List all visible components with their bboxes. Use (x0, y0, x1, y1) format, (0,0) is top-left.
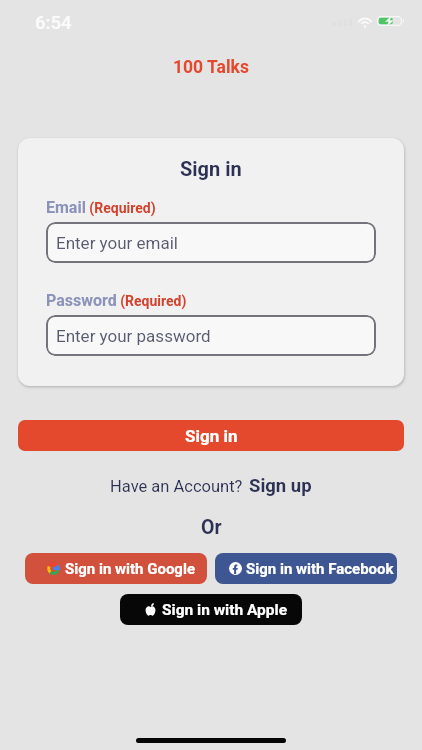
staticText: Password (Required) (46, 291, 187, 310)
button[interactable]: Sign up (249, 475, 312, 497)
button[interactable]: Sign in with Facebook (215, 553, 397, 584)
staticText: Sign up (249, 475, 312, 497)
staticText: Have an Account? (110, 477, 243, 496)
staticText: Sign in with Facebook (246, 560, 394, 578)
button[interactable]: Enter your email (46, 222, 376, 263)
staticText: Sign in with Apple (162, 601, 288, 619)
staticText: Sign in (185, 426, 238, 446)
button[interactable]: Sign in with Google (25, 553, 207, 584)
button[interactable]: Enter your password (46, 315, 376, 356)
staticText: 100 Talks (173, 57, 249, 78)
staticText: 6:54 (35, 12, 72, 34)
button[interactable]: Sign in with Apple (120, 594, 302, 625)
staticText: Enter your password (56, 326, 211, 346)
button[interactable]: Sign in (18, 420, 404, 451)
staticText: Email (Required) (46, 198, 156, 217)
staticText: Or (201, 516, 222, 539)
staticText: Enter your email (56, 233, 179, 253)
staticText: Sign in with Google (65, 560, 196, 578)
staticText: Sign in (180, 157, 242, 180)
